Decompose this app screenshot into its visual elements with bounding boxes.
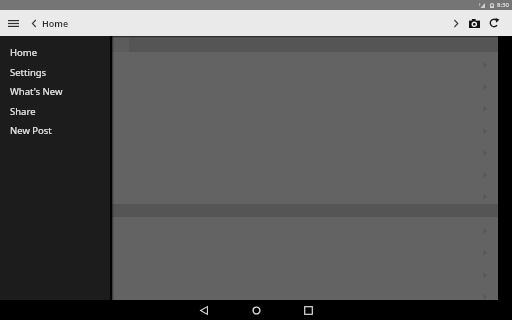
staticText: Settings bbox=[10, 66, 47, 79]
button[interactable]: Open navigation drawer bbox=[0, 10, 26, 36]
button[interactable]: Back bbox=[181, 300, 227, 320]
button[interactable]: Settings bbox=[0, 63, 110, 82]
button[interactable]: New Post bbox=[0, 121, 110, 140]
button[interactable]: Camera bbox=[465, 10, 484, 36]
staticText: Home bbox=[10, 46, 38, 59]
button[interactable]: Recent apps bbox=[285, 300, 331, 320]
staticText: Home bbox=[42, 17, 69, 29]
button[interactable]: Back bbox=[26, 10, 42, 36]
button[interactable]: Home bbox=[233, 300, 279, 320]
button[interactable]: Home bbox=[0, 43, 110, 62]
button[interactable]: Refresh bbox=[484, 10, 504, 36]
staticText: 8:30 bbox=[497, 1, 509, 9]
button[interactable]: What's New bbox=[0, 82, 110, 101]
button[interactable]: Forward bbox=[446, 10, 465, 36]
staticText: New Post bbox=[10, 124, 52, 137]
staticText: What's New bbox=[10, 85, 63, 98]
staticText: Share bbox=[10, 105, 36, 118]
button[interactable]: Share bbox=[0, 102, 110, 121]
